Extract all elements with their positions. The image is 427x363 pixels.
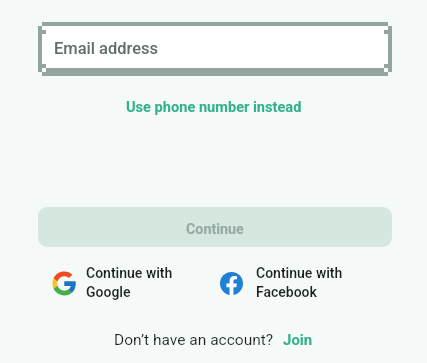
staticText: Continue with Google: [86, 265, 173, 300]
staticText: Email address: [54, 39, 159, 58]
other: Continue with Facebook: [220, 272, 243, 295]
button[interactable]: Email address: [38, 22, 392, 76]
button[interactable]: Use phone number instead: [0, 98, 427, 115]
button[interactable]: Continue with Google: [50, 265, 190, 300]
staticText: Continue with Facebook: [256, 265, 343, 300]
staticText: Join: [283, 331, 313, 349]
staticText: Use phone number instead: [126, 98, 302, 115]
staticText: Continue: [186, 221, 244, 238]
other: Continue with Google: [52, 271, 77, 296]
button[interactable]: Continue: [38, 207, 392, 247]
staticText: Don’t have an account?: [114, 331, 274, 349]
button[interactable]: Join: [283, 331, 313, 349]
button[interactable]: Continue with Facebook: [219, 265, 359, 300]
